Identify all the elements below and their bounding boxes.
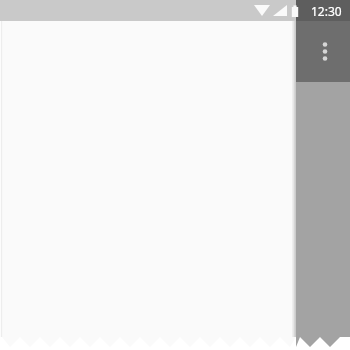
- button[interactable]: More options: [311, 32, 339, 70]
